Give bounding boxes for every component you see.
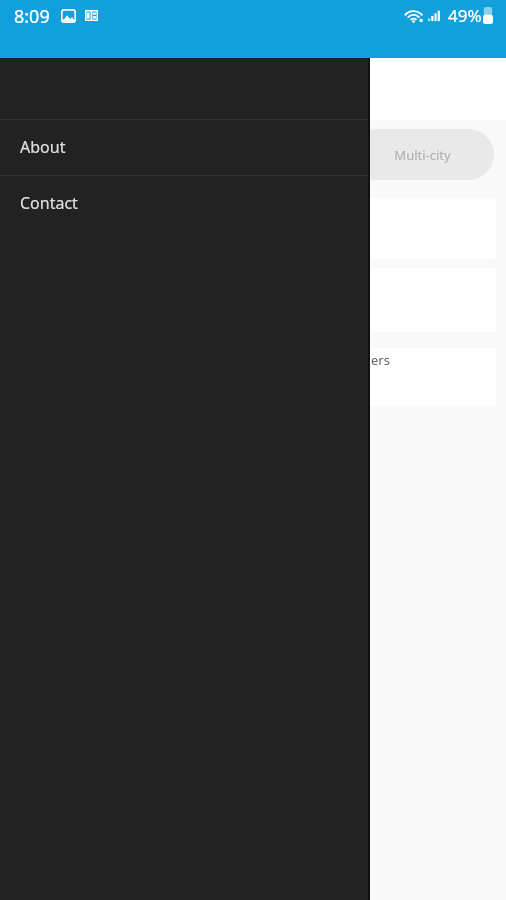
button[interactable]: Depart <box>10 348 496 406</box>
button[interactable]: Contact <box>0 176 370 231</box>
button[interactable]: Multi-city <box>351 129 494 180</box>
button[interactable]: One-way <box>12 129 154 180</box>
staticText: About <box>20 136 66 158</box>
staticText: Multi-city <box>394 146 451 164</box>
other: Signal <box>428 9 440 22</box>
staticText: One-way <box>56 146 110 164</box>
staticText: Cabin class & passengers <box>236 351 390 369</box>
staticText: From <box>26 205 58 223</box>
other: Notification <box>85 10 98 21</box>
staticText: 8:09 <box>14 4 50 27</box>
other: Screenshot <box>61 9 76 23</box>
other: Battery <box>483 7 493 24</box>
button[interactable]: To <box>10 268 496 332</box>
staticText: 49% <box>448 4 482 27</box>
button[interactable]: From <box>10 198 496 259</box>
button[interactable]: About <box>0 120 370 175</box>
other: Wi-Fi <box>405 9 424 23</box>
staticText: Contact <box>20 192 78 214</box>
